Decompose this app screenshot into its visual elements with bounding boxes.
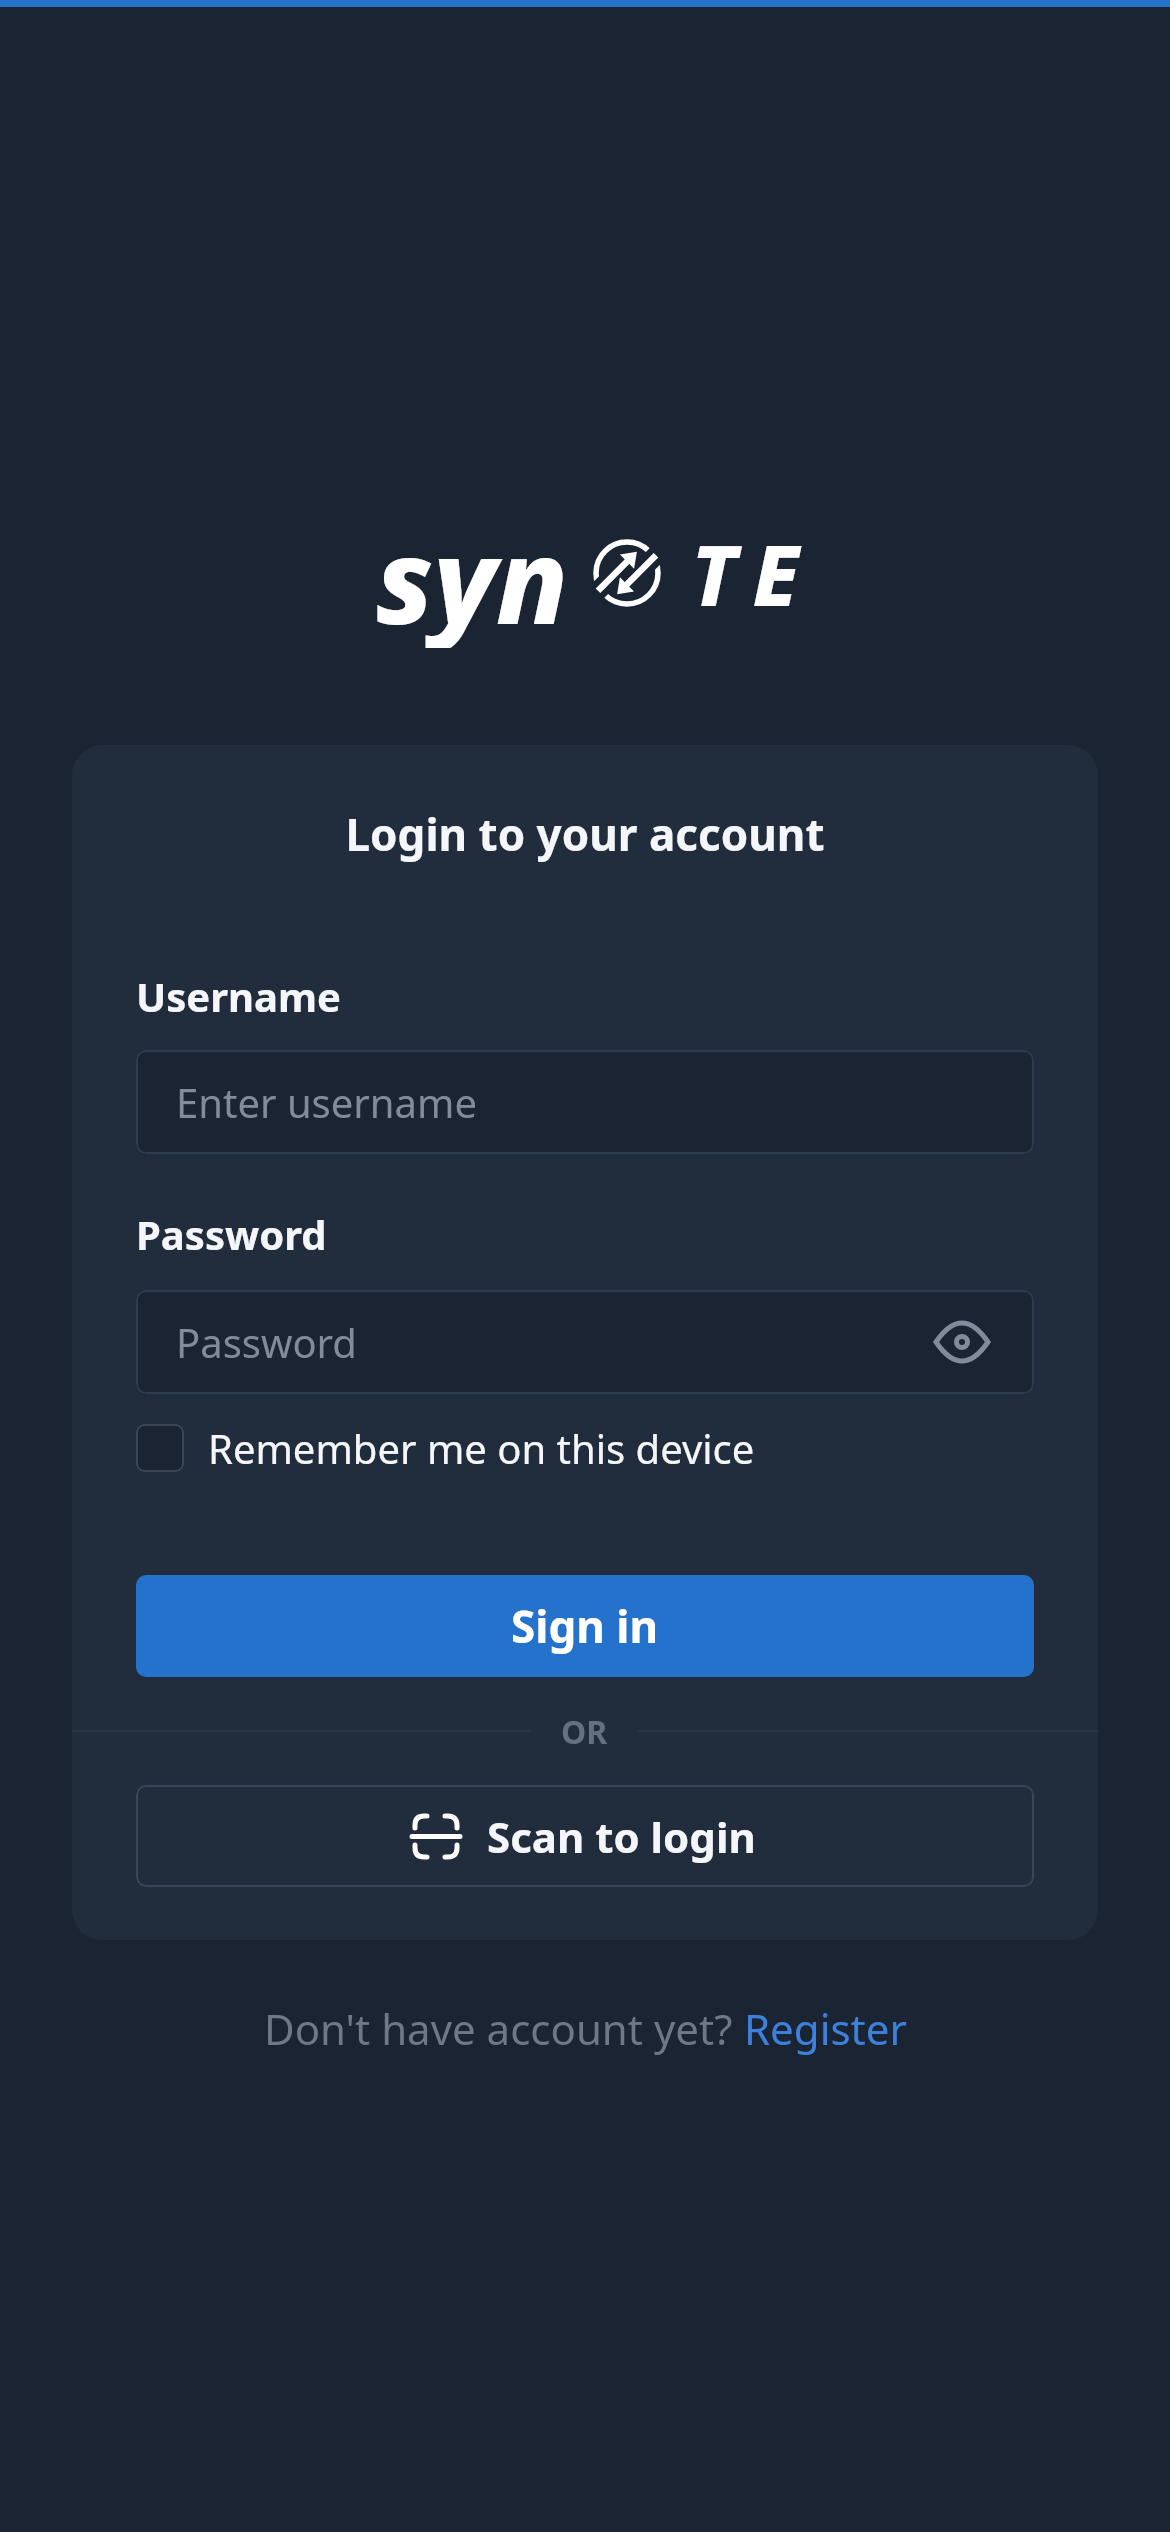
staticText: Password: [136, 1207, 327, 1261]
staticText: Sign in: [511, 1596, 659, 1656]
staticText: Login to your account: [72, 804, 1098, 864]
staticText: Password: [176, 1315, 357, 1369]
staticText: Don't have account yet?: [264, 2000, 744, 2057]
button[interactable]: Don't have account yet?: [264, 2000, 907, 2057]
button[interactable]: Remember me on this device: [136, 1421, 755, 1475]
staticText: Username: [136, 969, 341, 1023]
button[interactable]: Enter username: [136, 1050, 1034, 1154]
staticText: Scan to login: [487, 1808, 756, 1865]
staticText: Enter username: [176, 1075, 477, 1129]
staticText: syn: [376, 498, 569, 648]
staticText: TE: [691, 516, 815, 630]
button[interactable]: Password: [136, 1290, 1034, 1394]
staticText: OR: [561, 1710, 608, 1752]
staticText: Register: [744, 2000, 907, 2057]
staticText: Remember me on this device: [208, 1421, 755, 1475]
button[interactable]: Sign in: [136, 1575, 1034, 1677]
button[interactable]: Scan to login: [136, 1785, 1034, 1887]
